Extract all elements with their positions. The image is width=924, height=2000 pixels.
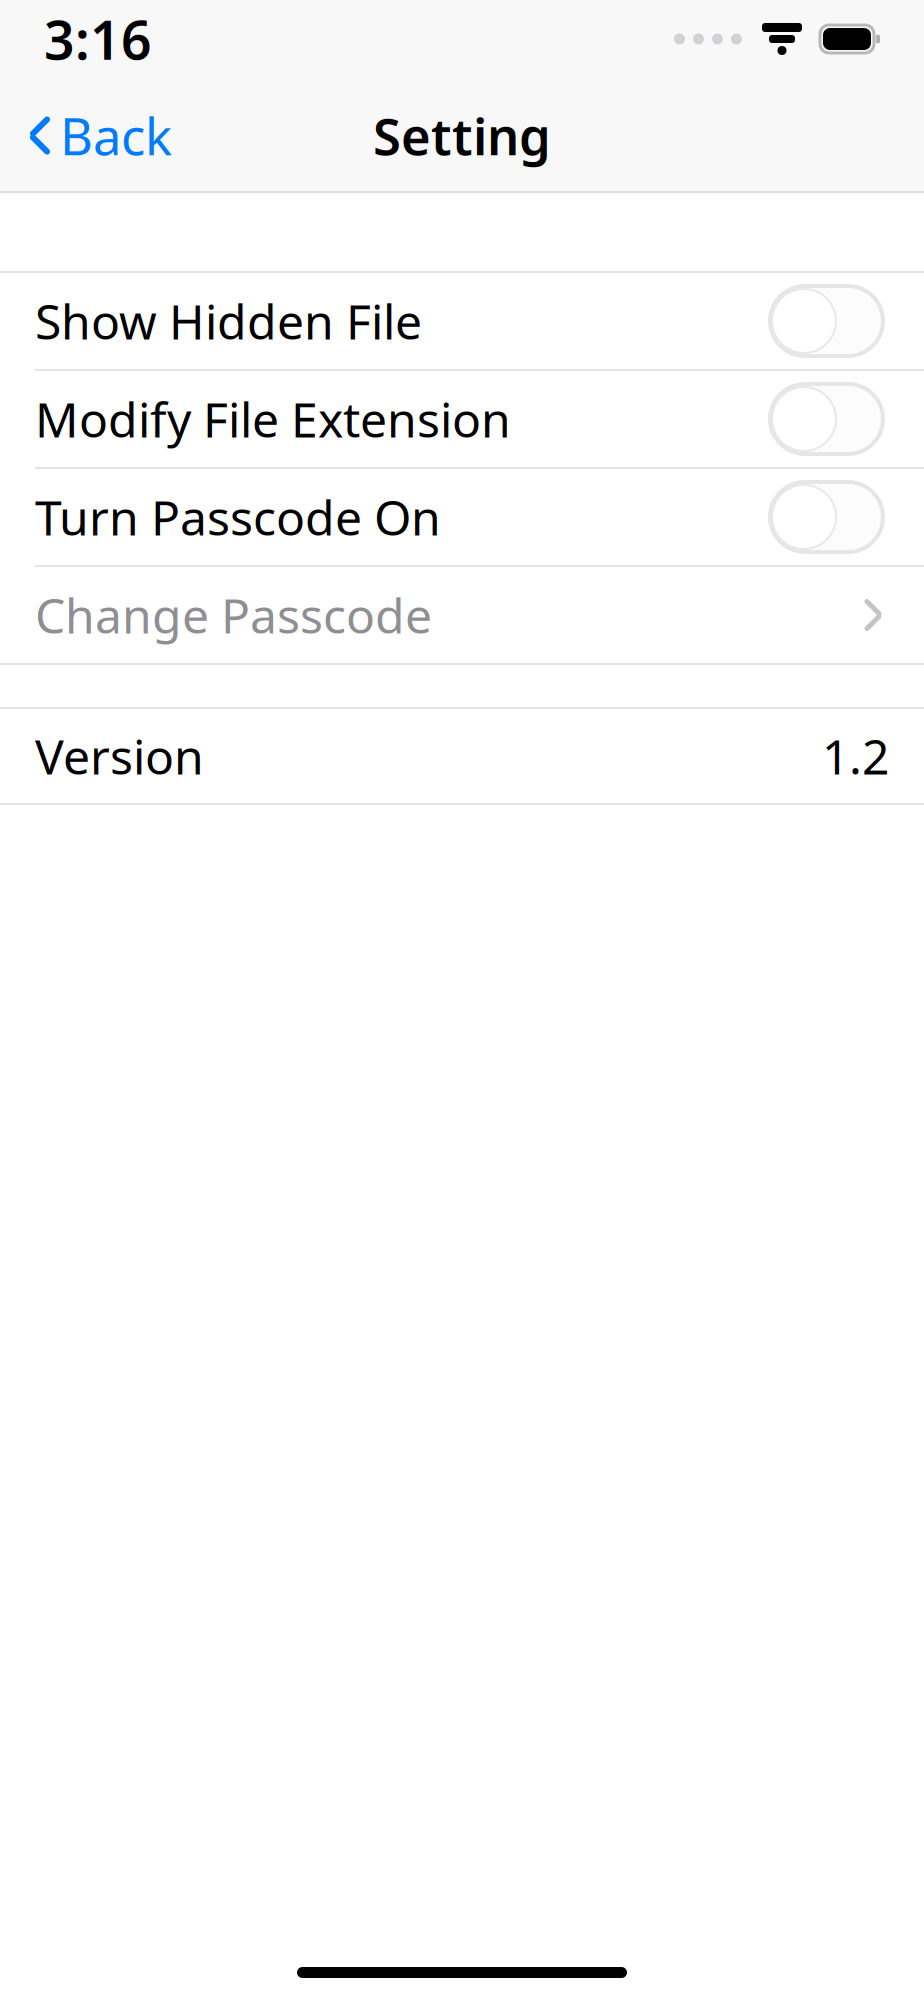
button[interactable]: Back <box>6 88 194 183</box>
button[interactable]: Turn Passcode On <box>0 469 924 565</box>
staticText: Version <box>35 724 204 788</box>
staticText: Back <box>60 102 172 169</box>
staticText: Turn Passcode On <box>35 485 441 549</box>
button[interactable]: Change Passcode <box>0 567 924 663</box>
staticText: Show Hidden File <box>35 289 422 353</box>
staticText: 3:16 <box>44 4 152 74</box>
button[interactable]: Modify File Extension <box>0 371 924 467</box>
staticText: Modify File Extension <box>35 387 511 451</box>
staticText: Change Passcode <box>35 583 432 647</box>
staticText: 1.2 <box>822 724 889 788</box>
staticText: Setting <box>373 102 551 169</box>
button[interactable]: Show Hidden File <box>0 273 924 369</box>
